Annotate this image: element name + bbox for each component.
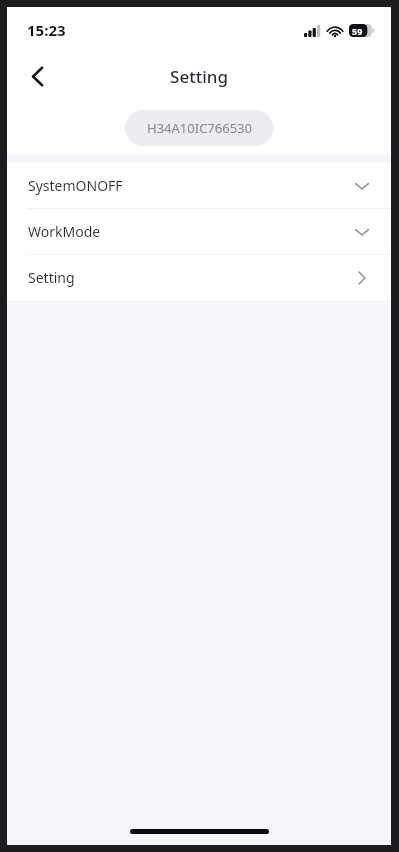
staticText: SystemONOFF <box>28 176 355 195</box>
staticText: 59 <box>352 25 363 37</box>
staticText: Setting <box>170 65 228 88</box>
staticText: Setting <box>28 268 355 287</box>
staticText: H34A10IC766530 <box>147 119 252 137</box>
button[interactable]: WorkMode <box>7 209 391 254</box>
button[interactable]: SystemONOFF <box>7 163 391 208</box>
button[interactable]: Setting <box>7 255 391 300</box>
button[interactable]: Back <box>17 56 57 96</box>
button[interactable]: H34A10IC766530 <box>125 110 273 146</box>
staticText: WorkMode <box>28 222 355 241</box>
staticText: 15:23 <box>27 20 66 40</box>
